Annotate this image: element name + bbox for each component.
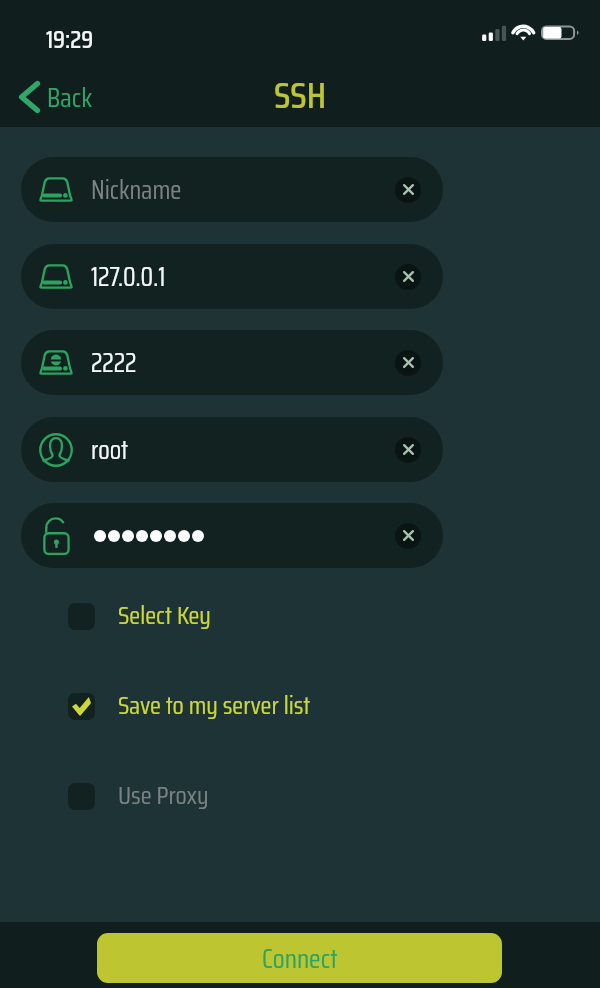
staticText: Back	[47, 76, 93, 118]
button[interactable]: Clear	[395, 523, 421, 549]
button[interactable]: Select Key	[68, 594, 211, 639]
staticText: root	[91, 429, 129, 470]
button[interactable]: Clear	[21, 503, 443, 568]
staticText: Select Key	[118, 595, 211, 635]
button[interactable]: Clear	[395, 350, 421, 376]
button[interactable]: root	[21, 417, 443, 482]
staticText: Use Proxy	[118, 775, 209, 815]
button[interactable]: Clear	[395, 264, 421, 290]
staticText: Connect	[262, 937, 338, 979]
staticText: 19:29	[46, 20, 94, 59]
staticText: SSH	[274, 66, 327, 124]
button[interactable]: Clear	[395, 177, 421, 203]
button[interactable]: Back	[17, 72, 95, 122]
button[interactable]: Connect	[97, 933, 502, 983]
staticText: 2222	[91, 342, 137, 383]
staticText: Save to my server list	[118, 685, 311, 725]
button[interactable]: Use Proxy	[68, 774, 209, 819]
staticText: Nickname	[91, 169, 182, 210]
button[interactable]: Clear	[395, 437, 421, 463]
staticText: 127.0.0.1	[91, 256, 166, 297]
button[interactable]: 127.0.0.1	[21, 244, 443, 309]
button[interactable]: Nickname	[21, 157, 443, 222]
button[interactable]: 2222	[21, 330, 443, 395]
button[interactable]: Save to my server list	[68, 684, 311, 729]
